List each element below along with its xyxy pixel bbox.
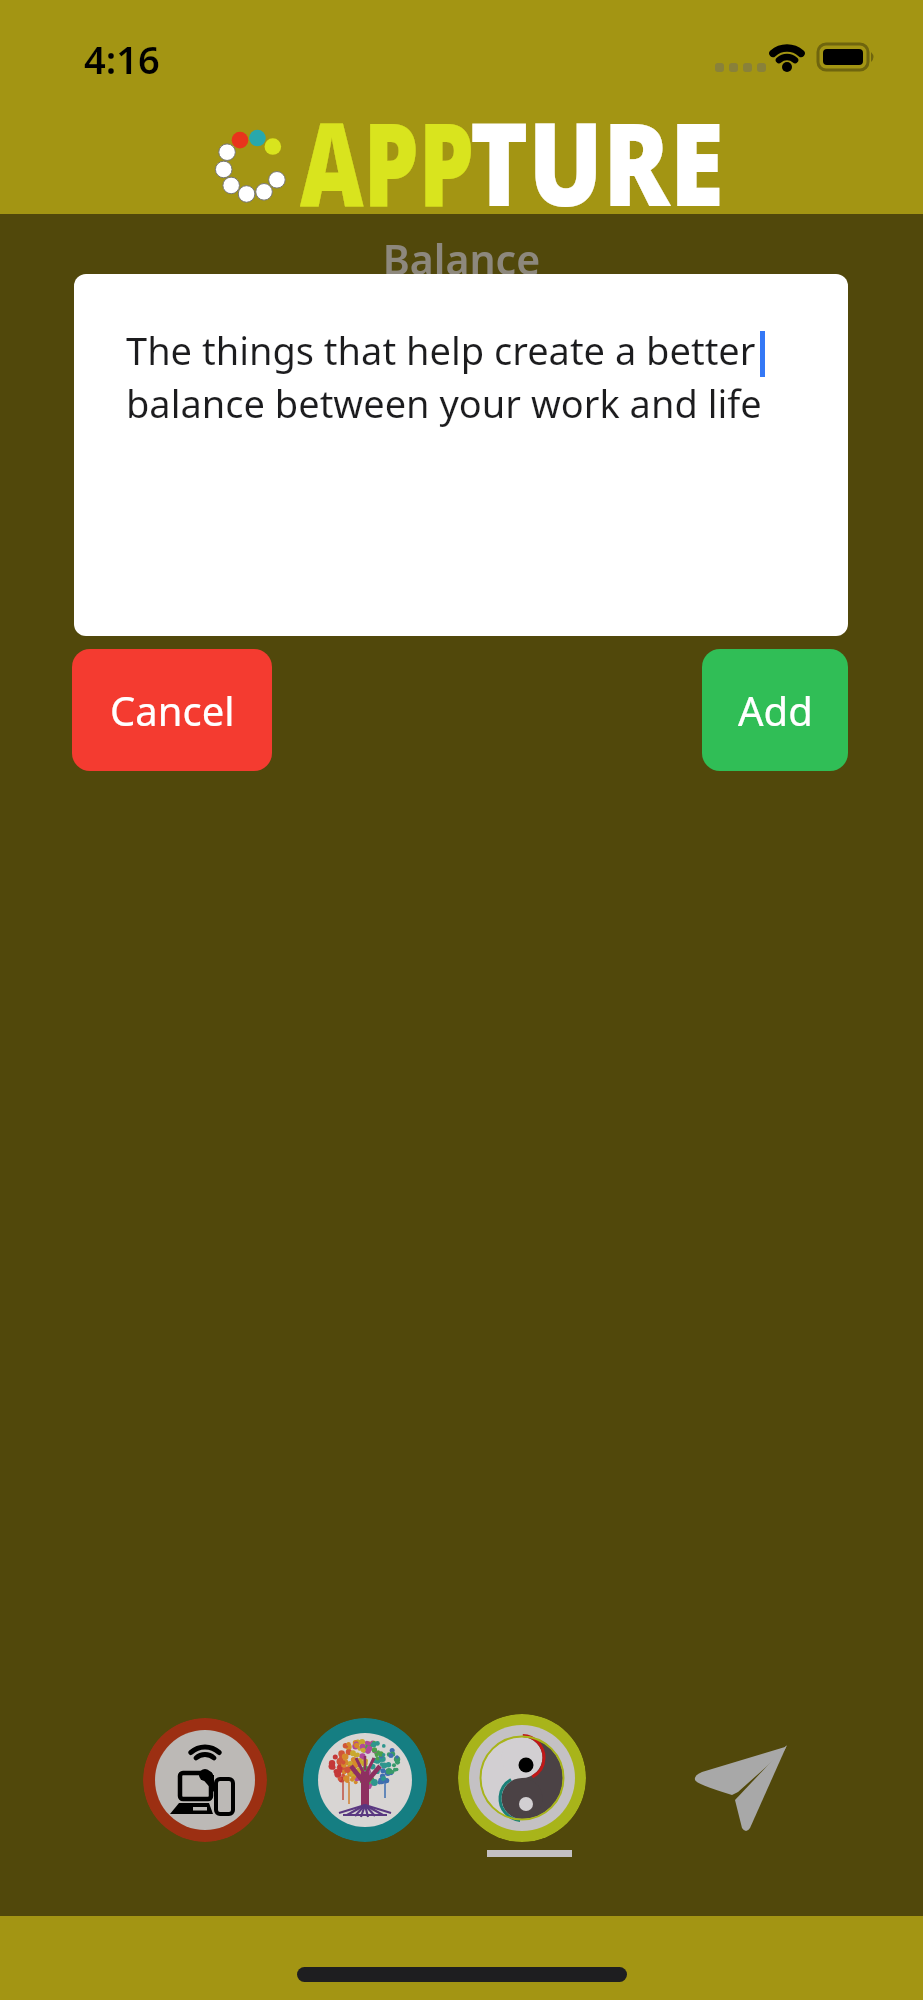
button[interactable] [303,1718,427,1842]
staticText: APP [300,83,474,240]
button[interactable] [458,1714,586,1842]
button[interactable]: Add [702,649,848,771]
staticText: TURE [470,83,725,240]
button[interactable] [143,1718,267,1842]
staticText: Add [738,683,813,737]
button[interactable]: Cancel [72,649,272,771]
button[interactable]: The things that help create a better bal… [74,274,848,636]
staticText: 4:16 [84,33,160,85]
button[interactable] [688,1730,798,1840]
staticText: Balance [0,231,923,287]
staticText: The things that help create a better bal… [126,324,762,429]
staticText: Cancel [110,683,235,737]
